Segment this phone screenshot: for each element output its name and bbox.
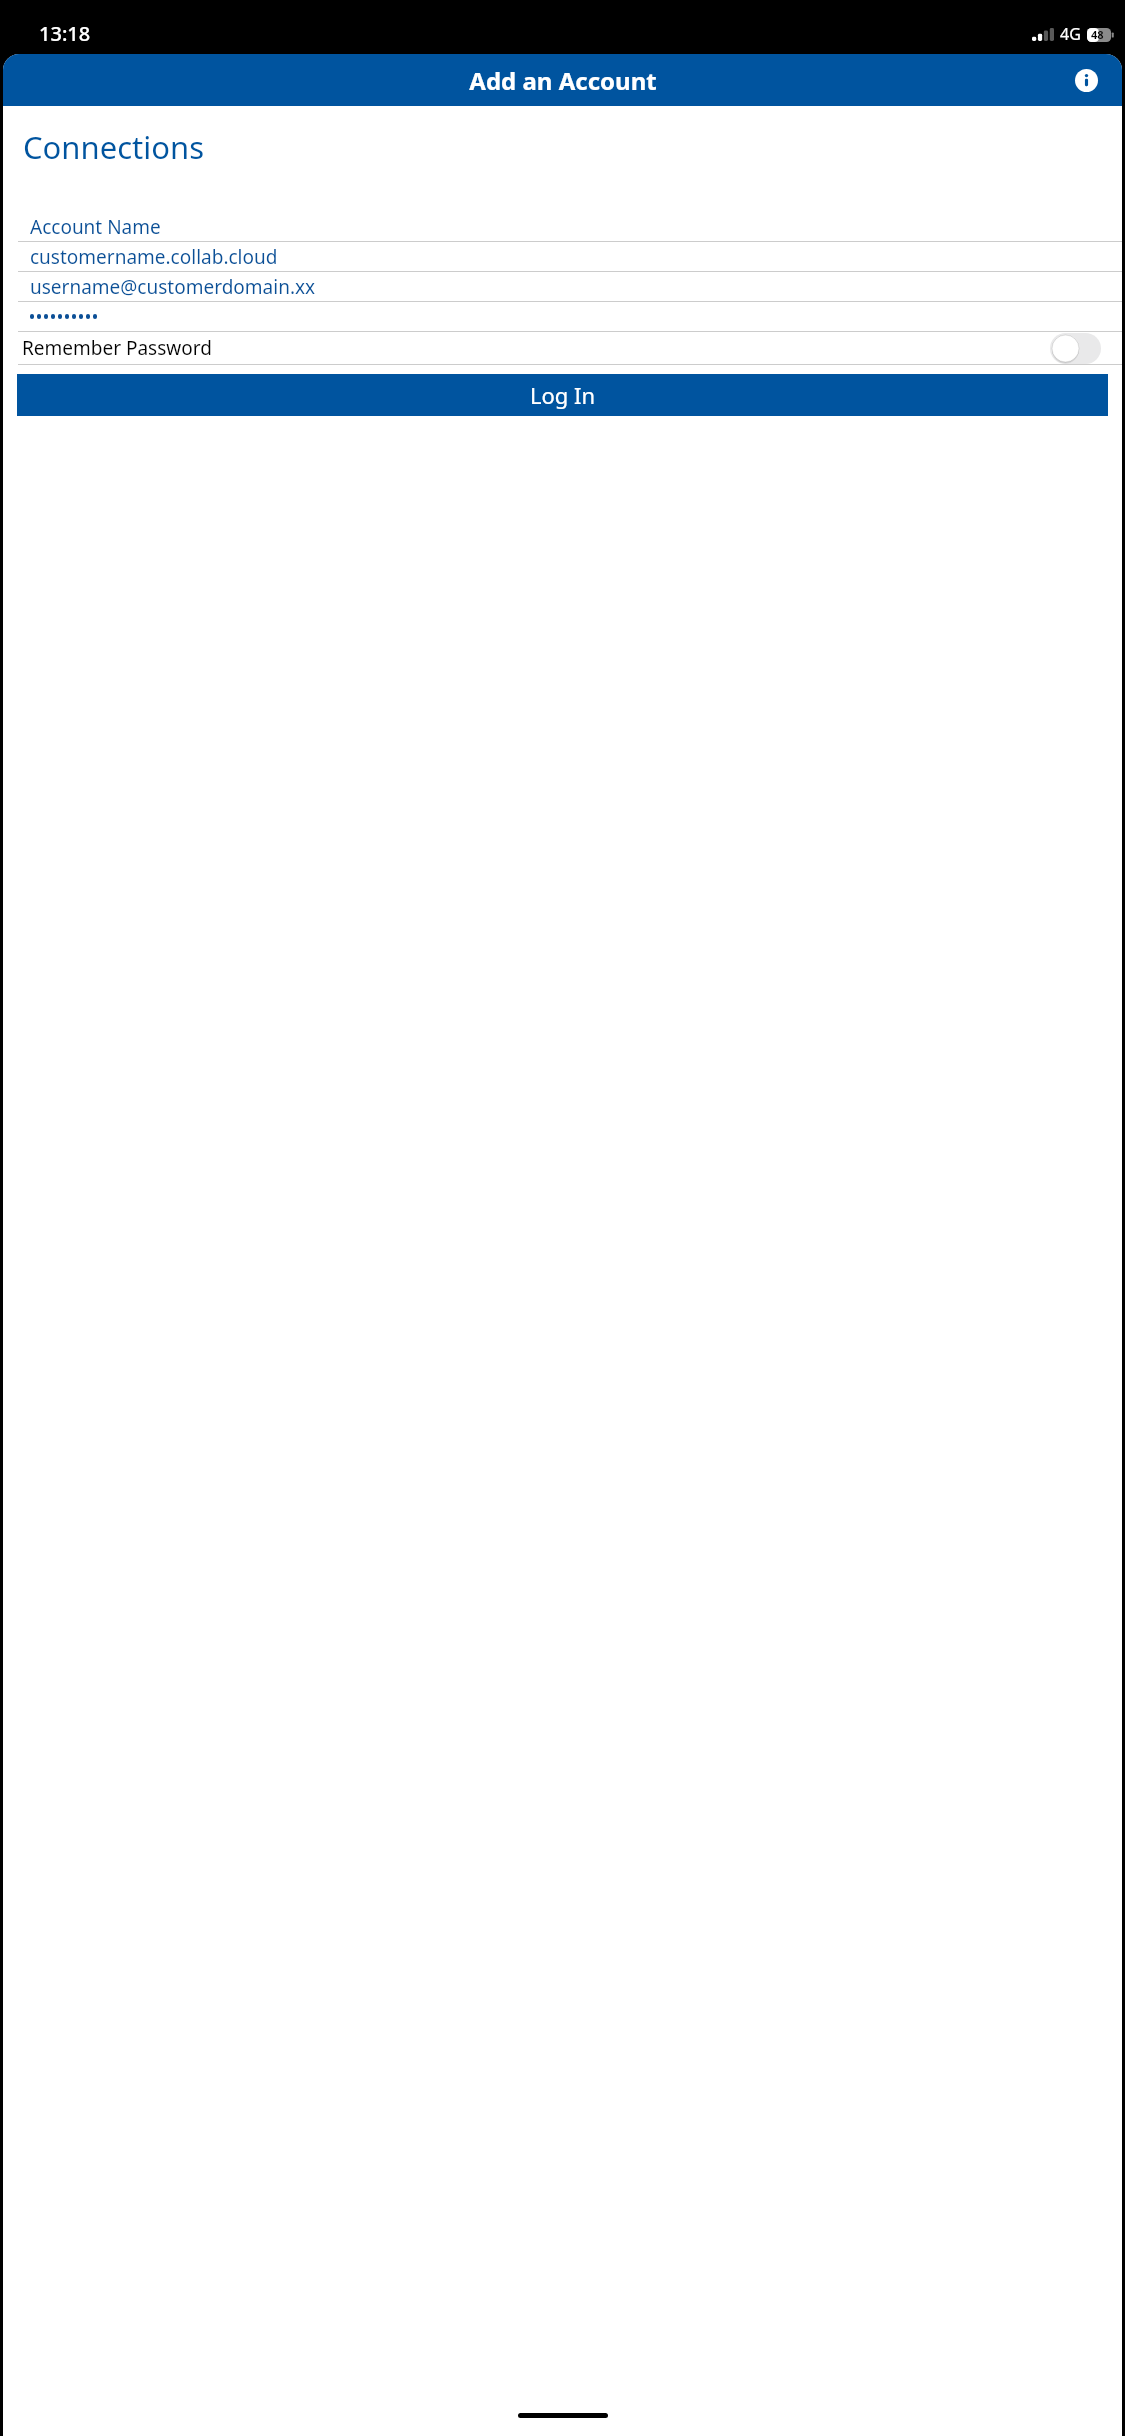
staticText: Remember Password xyxy=(22,335,212,361)
staticText: username@customerdomain.xx xyxy=(30,274,316,300)
staticText: 48 xyxy=(1091,27,1104,42)
button[interactable]: Remember Password xyxy=(1050,333,1101,364)
staticText: Connections xyxy=(23,126,204,168)
staticText: 4G xyxy=(1060,23,1081,45)
button[interactable]: Remember Password xyxy=(3,332,1122,364)
staticText: customername.collab.cloud xyxy=(30,244,278,270)
staticText: 13:18 xyxy=(39,20,91,47)
button[interactable]: Account Name xyxy=(3,212,1122,241)
button[interactable]: username@customerdomain.xx xyxy=(3,272,1122,301)
button[interactable]: customername.collab.cloud xyxy=(3,242,1122,271)
button[interactable] xyxy=(3,302,1122,331)
button[interactable]: Log In xyxy=(17,374,1108,416)
staticText: Account Name xyxy=(30,214,161,240)
button[interactable]: Information xyxy=(1064,58,1108,102)
staticText: Add an Account xyxy=(469,64,657,97)
staticText: Log In xyxy=(530,380,596,410)
